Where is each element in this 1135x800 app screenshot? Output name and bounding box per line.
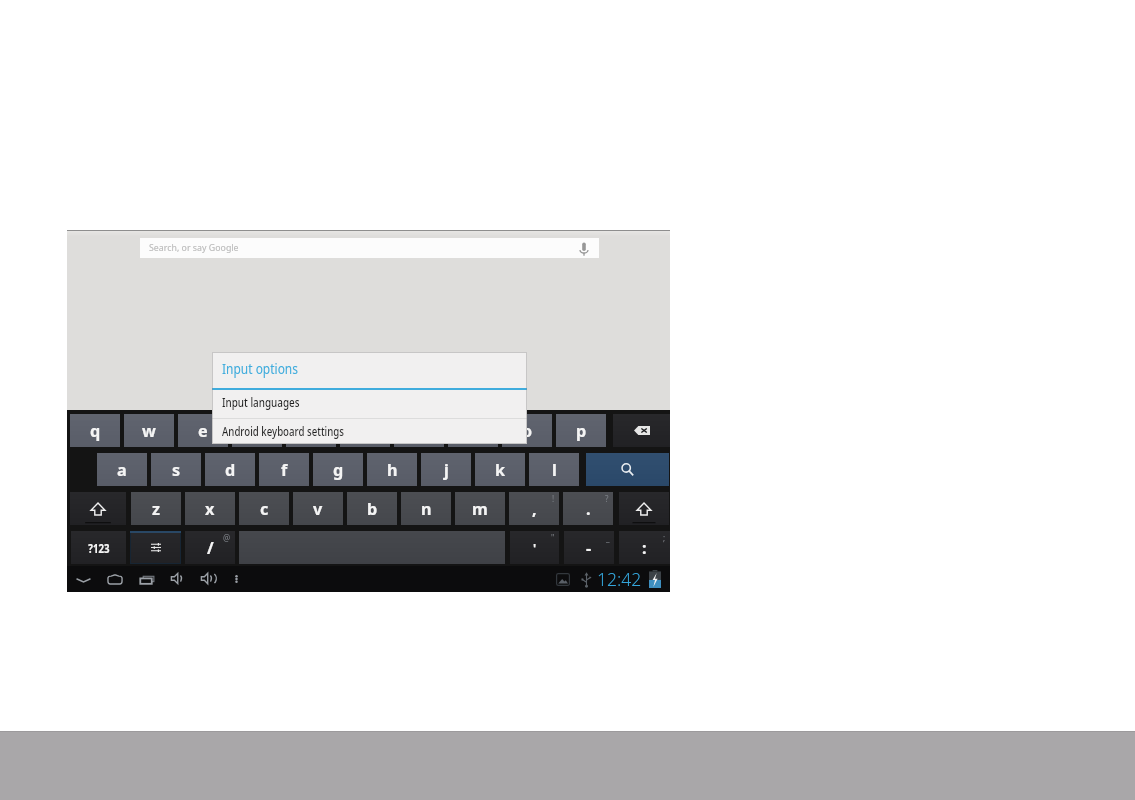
button[interactable]: o: [502, 414, 552, 447]
other: Home: [107, 575, 123, 584]
staticText: q: [90, 420, 101, 442]
staticText: :: [642, 537, 647, 559]
other: Voice search: [579, 242, 589, 256]
button[interactable]: y: [340, 414, 390, 447]
button[interactable]: k: [475, 453, 525, 486]
staticText: Input languages: [222, 394, 300, 410]
other: Volume down: [171, 573, 184, 584]
staticText: e: [198, 420, 208, 442]
staticText: ': [533, 540, 537, 556]
staticText: !: [552, 493, 555, 504]
button[interactable]: Input languages: [212, 390, 527, 418]
button[interactable]: Input options: [212, 352, 527, 388]
staticText: k: [495, 459, 506, 481]
button[interactable]: f: [259, 453, 309, 486]
button[interactable]: ,: [509, 492, 559, 525]
staticText: c: [260, 498, 269, 520]
staticText: n: [421, 498, 432, 520]
staticText: Search, or say Google: [149, 241, 239, 254]
staticText: l: [552, 459, 557, 481]
staticText: v: [313, 498, 323, 520]
staticText: h: [387, 459, 398, 481]
staticText: -: [586, 537, 592, 559]
staticText: j: [444, 459, 449, 481]
button[interactable]: x: [185, 492, 235, 525]
button[interactable]: q: [70, 414, 120, 447]
button[interactable]: n: [401, 492, 451, 525]
button[interactable]: Android keyboard settings: [212, 419, 527, 444]
button[interactable]: p: [556, 414, 606, 447]
staticText: _: [606, 532, 610, 543]
staticText: b: [367, 498, 378, 520]
button[interactable]: s: [151, 453, 201, 486]
button[interactable]: ?123: [71, 531, 126, 564]
button[interactable]: a: [97, 453, 147, 486]
button[interactable]: Search: [586, 453, 669, 486]
staticText: d: [225, 459, 236, 481]
staticText: s: [172, 459, 181, 481]
staticText: Android keyboard settings: [222, 423, 344, 439]
staticText: w: [142, 420, 156, 442]
button[interactable]: e: [178, 414, 228, 447]
button[interactable]: m: [455, 492, 505, 525]
button[interactable]: Input method settings: [130, 531, 181, 564]
button[interactable]: b: [347, 492, 397, 525]
button[interactable]: w: [124, 414, 174, 447]
other: Volume up: [201, 573, 218, 584]
button[interactable]: :: [619, 531, 670, 564]
staticText: ;: [663, 532, 666, 543]
staticText: ?: [605, 493, 609, 504]
staticText: g: [333, 459, 344, 481]
other: More options: [235, 575, 238, 583]
staticText: ?123: [88, 540, 110, 556]
button[interactable]: t: [286, 414, 336, 447]
staticText: Input options: [222, 358, 299, 378]
staticText: p: [576, 420, 587, 442]
button[interactable]: z: [131, 492, 181, 525]
button[interactable]: j: [421, 453, 471, 486]
staticText: z: [152, 498, 160, 520]
button[interactable]: Shift: [70, 492, 126, 525]
staticText: f: [281, 459, 288, 481]
button[interactable]: Search, or say Google: [140, 238, 599, 258]
staticText: @: [223, 532, 231, 543]
staticText: .: [586, 498, 591, 520]
button[interactable]: /: [185, 531, 235, 564]
staticText: /: [207, 537, 214, 559]
staticText: x: [205, 498, 215, 520]
button[interactable]: i: [448, 414, 498, 447]
other: Hide keyboard: [77, 579, 90, 582]
button[interactable]: -: [564, 531, 614, 564]
button[interactable]: d: [205, 453, 255, 486]
button[interactable]: l: [529, 453, 579, 486]
staticText: m: [472, 498, 488, 520]
other: Recents: [140, 576, 154, 584]
button[interactable]: v: [293, 492, 343, 525]
button[interactable]: .: [563, 492, 613, 525]
button[interactable]: Shift: [619, 492, 669, 525]
staticText: t: [307, 420, 315, 442]
button[interactable]: ': [510, 531, 559, 564]
staticText: 12:42: [597, 567, 642, 591]
staticText: o: [522, 420, 533, 442]
button[interactable]: r: [232, 414, 282, 447]
button[interactable]: u: [394, 414, 444, 447]
button[interactable]: Backspace: [613, 414, 670, 447]
staticText: ": [551, 532, 555, 543]
staticText: r: [253, 420, 261, 442]
button[interactable]: c: [239, 492, 289, 525]
staticText: a: [117, 459, 127, 481]
button[interactable]: g: [313, 453, 363, 486]
button[interactable]: h: [367, 453, 417, 486]
staticText: ,: [532, 498, 537, 520]
